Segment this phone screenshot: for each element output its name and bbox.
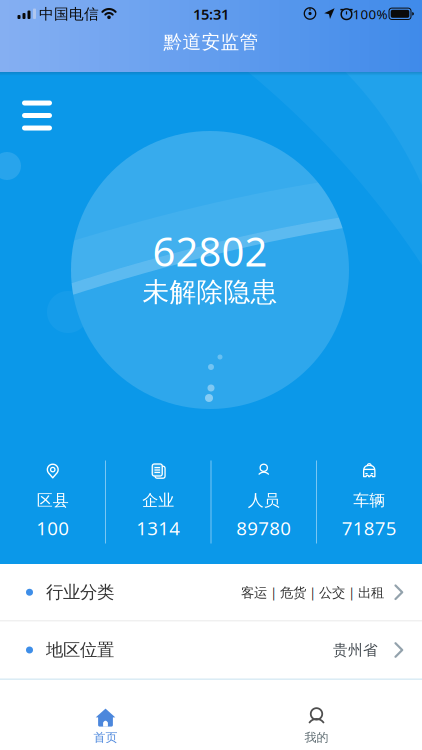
staticText: 我的 [304,730,328,745]
staticText: 人员 [248,491,280,510]
staticText: 车辆 [353,491,385,510]
button[interactable]: 地区位置 [0,621,422,678]
staticText: 62802 [152,224,267,277]
staticText: 客运 | 危货 | 公交 | 出租 [241,583,384,601]
staticText: 区县 [37,491,69,510]
staticText: 100% [352,5,387,23]
button[interactable]: 菜单 [15,93,59,137]
staticText: 1314 [136,516,180,540]
button[interactable]: 首页 [0,680,211,750]
staticText: 71875 [342,516,397,540]
staticText: 行业分类 [46,582,114,603]
staticText: 地区位置 [46,639,114,661]
staticText: 首页 [93,730,117,745]
staticText: 贵州省 [333,641,378,659]
staticText: 未解除隐患 [142,276,277,308]
staticText: 15:31 [193,4,229,24]
staticText: 企业 [142,491,174,510]
staticText: 黔道安监管 [163,30,258,53]
button[interactable]: 我的 [211,680,422,750]
staticText: 100 [36,516,69,540]
staticText: 89780 [236,516,291,540]
button[interactable]: 行业分类 [0,564,422,620]
staticText: 中国电信 [39,5,99,23]
